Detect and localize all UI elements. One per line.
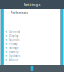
staticText: About xyxy=(9,58,18,62)
button[interactable]: About xyxy=(4,58,60,62)
button[interactable]: Privacy xyxy=(4,42,60,46)
staticText: Privacy xyxy=(9,42,17,46)
button[interactable]: Display xyxy=(4,34,60,38)
staticText: Preferences xyxy=(10,11,27,15)
staticText: General xyxy=(9,30,20,34)
button[interactable]: Updates xyxy=(4,54,60,58)
button[interactable]: Sounds xyxy=(4,38,60,42)
staticText: Display xyxy=(9,34,18,38)
button[interactable]: General xyxy=(4,30,60,34)
staticText: Storage xyxy=(9,46,19,50)
button[interactable]: Storage xyxy=(4,46,60,50)
staticText: Updates xyxy=(9,54,20,58)
staticText: Sounds xyxy=(9,38,19,42)
staticText: Settings xyxy=(23,2,40,7)
button[interactable]: Battery xyxy=(4,50,60,54)
staticText: Battery xyxy=(9,50,18,54)
